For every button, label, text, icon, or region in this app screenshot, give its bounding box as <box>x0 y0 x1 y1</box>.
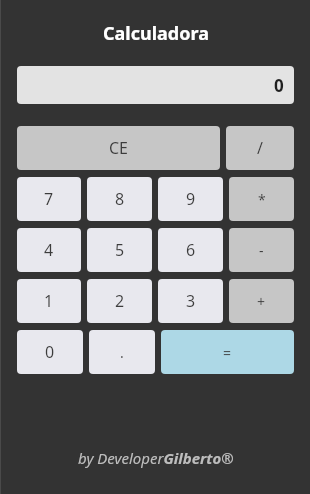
staticText: CE <box>109 137 129 159</box>
button[interactable]: 0 <box>17 330 83 374</box>
staticText: 6 <box>186 239 196 261</box>
button[interactable]: CE <box>17 126 220 170</box>
staticText: 0 <box>274 74 284 97</box>
staticText: 0 <box>45 341 55 363</box>
button[interactable]: 1 <box>17 279 81 323</box>
button[interactable]: 8 <box>87 177 152 221</box>
button[interactable]: 7 <box>17 177 81 221</box>
staticText: / <box>257 137 263 159</box>
staticText: by DeveloperGilberto® <box>78 448 234 468</box>
button[interactable]: 5 <box>87 228 152 272</box>
staticText: 2 <box>115 290 125 312</box>
button[interactable]: - <box>229 228 294 272</box>
button[interactable]: 0 <box>17 66 294 104</box>
staticText: 1 <box>44 290 54 312</box>
staticText: . <box>120 343 124 362</box>
staticText: 9 <box>186 188 196 210</box>
button[interactable]: + <box>229 279 294 323</box>
button[interactable]: . <box>89 330 155 374</box>
staticText: + <box>257 292 266 311</box>
staticText: 3 <box>186 290 196 312</box>
staticText: * <box>258 190 266 209</box>
staticText: 7 <box>44 188 54 210</box>
staticText: - <box>259 241 264 260</box>
button[interactable]: / <box>226 126 294 170</box>
staticText: 5 <box>115 239 125 261</box>
staticText: = <box>223 343 232 362</box>
button[interactable]: 2 <box>87 279 152 323</box>
button[interactable]: 4 <box>17 228 81 272</box>
staticText: 8 <box>115 188 125 210</box>
button[interactable]: = <box>161 330 294 374</box>
staticText: Calculadora <box>103 21 209 46</box>
button[interactable]: 9 <box>158 177 223 221</box>
button[interactable]: * <box>229 177 294 221</box>
button[interactable]: 3 <box>158 279 223 323</box>
button[interactable]: 6 <box>158 228 223 272</box>
staticText: 4 <box>44 239 54 261</box>
